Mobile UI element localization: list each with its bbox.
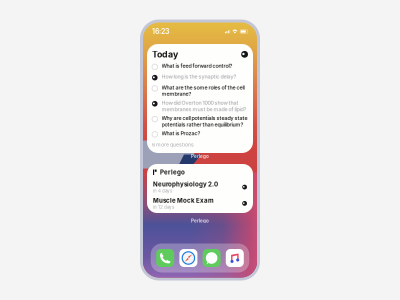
button[interactable]: What are the some roles of the cell memb… [152, 84, 248, 97]
button[interactable]: How did Overton 1000 show that membranes… [152, 100, 248, 112]
button[interactable]: Why are cell potentials steady state pot… [152, 115, 248, 128]
staticText: Muscle Mock Exam [153, 197, 214, 204]
staticText: 6 more questions [152, 142, 194, 148]
staticText: What are the some roles of the cell memb… [162, 84, 245, 97]
staticText: in 4 days [153, 188, 172, 194]
button[interactable]: Phone [156, 249, 174, 267]
button[interactable]: What is feed forward control? [152, 63, 248, 71]
staticText: Neurophysiology 2.0 [153, 180, 218, 188]
button[interactable]: Neurophysiology 2.0 [153, 180, 247, 194]
button[interactable]: Messages [203, 249, 221, 267]
button[interactable]: Music [226, 249, 244, 267]
staticText: How long is the synaptic delay? [162, 73, 237, 80]
staticText: Perlego [191, 153, 209, 159]
staticText: in 12 days [153, 204, 174, 210]
staticText: 16:23 [152, 27, 169, 36]
staticText: What is Prozac? [162, 130, 201, 137]
button[interactable]: How long is the synaptic delay? [152, 73, 248, 82]
staticText: What is feed forward control? [162, 63, 233, 69]
button[interactable]: What is Prozac? [152, 130, 248, 139]
staticText: Perlego [191, 218, 209, 223]
staticText: Today [152, 49, 178, 60]
staticText: How did Overton 1000 show that membranes… [162, 100, 247, 112]
button[interactable]: Safari [179, 249, 197, 267]
button[interactable]: Muscle Mock Exam [153, 197, 247, 210]
staticText: Perlego [160, 168, 185, 176]
staticText: Why are cell potentials steady state pot… [162, 115, 248, 128]
